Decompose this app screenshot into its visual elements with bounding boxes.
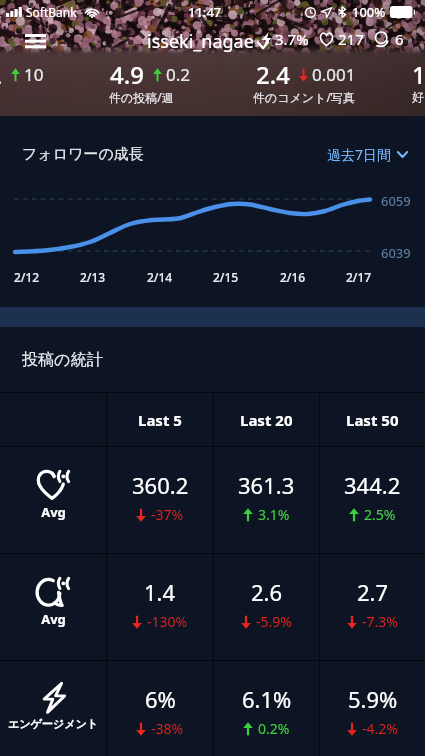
staticText: 好 — [412, 89, 424, 104]
button[interactable]: 5.9% — [320, 661, 425, 756]
staticText: 6039 — [381, 244, 411, 262]
button[interactable]: 360.2 — [107, 447, 213, 553]
staticText: 3.1% — [258, 505, 290, 524]
button[interactable]: 6.1% — [214, 661, 319, 756]
button[interactable]: エンゲージメント — [0, 661, 106, 756]
staticText: -38% — [151, 719, 184, 738]
staticText: エンゲージメント — [8, 717, 98, 731]
staticText: -7.3% — [362, 612, 398, 631]
staticText: -5.9% — [256, 612, 292, 631]
staticText: 2.6 — [251, 577, 283, 607]
staticText: -130% — [147, 612, 188, 631]
staticText: SoftBank — [26, 4, 77, 20]
staticText: 2 — [0, 58, 2, 91]
staticText: isseki_nagae — [147, 29, 254, 54]
staticText: 2/15 — [213, 269, 239, 285]
button[interactable]: isseki_nagae — [147, 29, 269, 54]
button[interactable]: 1.4 — [107, 554, 213, 660]
staticText: Avg — [41, 610, 66, 628]
button[interactable]: 344.2 — [320, 447, 425, 553]
staticText: 件の投稿/週 — [109, 89, 174, 105]
staticText: 2/14 — [147, 269, 173, 285]
staticText: 2/16 — [280, 269, 306, 285]
staticText: Last 5 — [138, 410, 182, 430]
staticText: -37% — [151, 505, 184, 524]
staticText: 2.7 — [357, 577, 389, 607]
staticText: Last 50 — [346, 410, 399, 430]
staticText: 0.001 — [312, 63, 356, 86]
staticText: 360.2 — [132, 470, 189, 500]
staticText: 2.5% — [364, 505, 396, 524]
staticText: 6 — [395, 29, 404, 49]
button[interactable]: Menu — [22, 27, 48, 53]
staticText: Avg — [41, 503, 66, 521]
staticText: 344.2 — [344, 470, 401, 500]
staticText: 100% — [352, 3, 386, 21]
button[interactable]: 361.3 — [214, 447, 319, 553]
staticText: 6% — [145, 684, 176, 714]
staticText: 0.2% — [258, 719, 290, 738]
staticText: 2/13 — [80, 269, 106, 285]
staticText: 2.4 — [256, 58, 290, 91]
staticText: 件のコメント/写真 — [253, 89, 355, 105]
button[interactable]: Avg — [0, 447, 106, 553]
staticText: 2/17 — [346, 269, 372, 285]
staticText: 5.9% — [348, 684, 398, 714]
staticText: フォロワーの成長 — [22, 145, 144, 164]
staticText: -4.2% — [362, 719, 398, 738]
button[interactable]: 2.6 — [214, 554, 319, 660]
staticText: 1.4 — [144, 577, 176, 607]
button[interactable]: 過去7日間 — [327, 145, 408, 164]
button[interactable]: Avg — [0, 554, 106, 660]
staticText: 0.2 — [166, 63, 191, 86]
staticText: 3.7% — [275, 29, 309, 49]
staticText: Last 20 — [240, 410, 293, 430]
staticText: 6.1% — [242, 684, 292, 714]
staticText: 11:47 — [188, 3, 222, 21]
staticText: 1 — [412, 58, 425, 91]
staticText: 217 — [338, 29, 364, 49]
button[interactable]: 2.7 — [320, 554, 425, 660]
staticText: 361.3 — [238, 470, 295, 500]
staticText: 10 — [24, 63, 44, 86]
staticText: 6059 — [381, 192, 411, 210]
button[interactable]: 6% — [107, 661, 213, 756]
staticText: 4.9 — [110, 58, 144, 91]
staticText: 過去7日間 — [327, 145, 392, 164]
staticText: 投稿の統計 — [22, 350, 103, 370]
staticText: 2/12 — [14, 269, 40, 285]
